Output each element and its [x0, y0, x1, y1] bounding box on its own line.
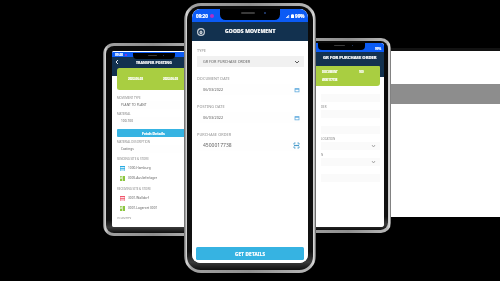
button[interactable]: Fetch Details	[117, 129, 190, 137]
staticText: MATERIAL	[117, 112, 131, 116]
staticText: 0001-Lagerort 0001	[128, 206, 158, 210]
staticText: LOCATION	[321, 137, 336, 141]
staticText: QUANTITY	[117, 217, 132, 219]
button[interactable]: 06/03/2022	[197, 84, 304, 95]
staticText: POSTING DATE	[197, 104, 225, 109]
staticText: TRANSFER POSTING	[136, 60, 172, 65]
staticText: DOCUMENT	[322, 70, 338, 74]
staticText: DER	[321, 105, 327, 109]
button[interactable]: PLANT TO PLANT	[117, 101, 190, 109]
button[interactable]: GR FOR PURCHASE ORDER	[197, 56, 304, 67]
staticText: GOODS MOVEMENT	[225, 28, 276, 35]
staticText: 99%	[375, 47, 382, 51]
staticText: 06/03/2022	[203, 115, 224, 120]
staticText: GR FOR PURCHASE ORDER	[203, 59, 251, 64]
staticText: 99%	[295, 13, 305, 19]
staticText: GET DETAILS	[235, 251, 266, 257]
staticText: 09:20	[115, 53, 124, 57]
staticText: PLANT TO PLANT	[121, 103, 147, 107]
staticText: 4500017738	[203, 142, 232, 149]
staticText: 3001-Walldorf	[128, 196, 149, 200]
staticText: 2022-06-03	[128, 77, 144, 81]
button[interactable]: 06/03/2022	[197, 112, 304, 123]
staticText: N	[321, 153, 324, 157]
staticText: TYPE	[197, 48, 207, 53]
staticText: DOCUMENT DATE	[197, 76, 230, 81]
button[interactable]	[321, 142, 380, 150]
button[interactable]: 0001-Lagerort 0001	[120, 203, 190, 213]
staticText: Fetch Details	[142, 131, 165, 136]
staticText: 4900177738	[322, 78, 338, 82]
staticText: 06/03/2022	[203, 87, 224, 92]
staticText: 2022-06-03	[163, 77, 179, 81]
staticText: 09:20	[196, 13, 208, 19]
button[interactable]: Home	[197, 28, 205, 36]
staticText: 0005-Auslieferlager	[128, 176, 158, 180]
button[interactable]: GET DETAILS	[196, 247, 304, 260]
staticText: 100	[359, 70, 364, 74]
staticText: Castings	[121, 147, 134, 151]
button[interactable]: 3001-Walldorf	[120, 193, 190, 203]
button[interactable]: 0005-Auslieferlager	[120, 173, 190, 183]
button[interactable]: 4500017738	[197, 140, 304, 151]
staticText: RECEIVING SITE & STORE	[117, 187, 151, 191]
staticText: 1000-Hamburg	[128, 166, 151, 170]
staticText: MOVEMENT TYPE	[117, 96, 141, 100]
staticText: MATERIAL DESCRIPTION	[117, 140, 151, 144]
button[interactable]: 100-100	[117, 117, 190, 125]
button[interactable]: 1000-Hamburg	[120, 163, 190, 173]
staticText: SENDING SITE & STORE	[117, 157, 149, 161]
staticText: PURCHASE ORDER	[197, 132, 232, 137]
staticText: 100-100	[121, 119, 133, 123]
button[interactable]: Castings	[117, 145, 190, 153]
staticText: 99%	[186, 53, 193, 57]
staticText: GR FOR PURCHASE ORDER	[323, 55, 377, 61]
button[interactable]	[321, 158, 380, 166]
